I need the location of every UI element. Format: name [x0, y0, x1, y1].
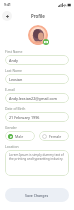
button[interactable]: Andy.lexsian22@gmail.com	[5, 93, 69, 103]
staticText: 21 February 1996	[9, 115, 40, 120]
staticText: Andy	[9, 58, 18, 63]
button[interactable]: Lorem Ipsum is simply dummy text of the …	[5, 150, 69, 176]
button[interactable]: Save Changes	[5, 188, 69, 202]
staticText: Andy.lexsian22@gmail.com	[9, 96, 58, 101]
staticText: 9:41	[4, 2, 11, 7]
button[interactable]: Change photo	[43, 39, 49, 45]
staticText: Lexsian	[9, 77, 23, 82]
staticText: First Name	[5, 49, 23, 54]
staticText: Location	[5, 144, 19, 149]
staticText: Gender	[5, 125, 17, 130]
staticText: Last Name	[5, 68, 22, 73]
button[interactable]: Lexsian	[5, 74, 69, 84]
staticText: Female	[49, 134, 62, 139]
button[interactable]: Andy	[5, 55, 69, 65]
button[interactable]: Back	[2, 11, 12, 21]
button[interactable]: Female	[39, 131, 69, 141]
staticText: E-mail	[5, 87, 15, 92]
button[interactable]: Male	[5, 131, 35, 141]
staticText: Male	[15, 134, 24, 139]
button[interactable]: 21 February 1996	[5, 112, 69, 122]
staticText: Profile	[31, 13, 45, 19]
staticText: Lorem Ipsum is simply dummy text of the …	[9, 153, 64, 161]
staticText: Date of Birth	[5, 106, 26, 111]
staticText: Save Changes	[25, 193, 49, 198]
